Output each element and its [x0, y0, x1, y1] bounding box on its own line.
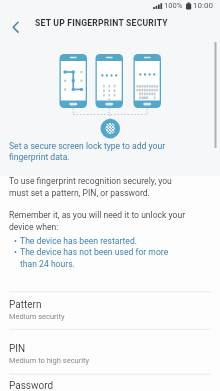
staticText: fingerprint data. [9, 152, 70, 162]
staticText: • [14, 236, 17, 246]
staticText: device when: [9, 222, 59, 232]
staticText: Password [9, 380, 54, 391]
staticText: than 24 hours. [20, 259, 75, 269]
staticText: The device has not been used for more [20, 247, 169, 257]
staticText: PIN [9, 343, 26, 355]
staticText: 10:00 [193, 1, 213, 10]
button[interactable]: Password [0, 375, 220, 391]
button[interactable] [0, 13, 36, 39]
staticText: must set a pattern, PIN, or password. [9, 188, 150, 198]
button[interactable]: PIN [0, 330, 220, 375]
staticText: 100% [164, 1, 183, 10]
staticText: Remember it, as you will need it to unlo… [9, 210, 186, 220]
button[interactable]: Pattern [0, 292, 220, 329]
staticText: Medium to high security [9, 356, 90, 365]
staticText: Pattern [9, 299, 42, 311]
staticText: SET UP FINGERPRINT SECURITY [35, 18, 168, 28]
staticText: Set a secure screen lock type to add you… [9, 141, 166, 151]
staticText: The device has been restarted. [20, 236, 138, 246]
staticText: To use fingerprint recognition securely,… [9, 176, 172, 186]
staticText: Medium security [9, 312, 65, 321]
staticText: • [14, 247, 17, 257]
